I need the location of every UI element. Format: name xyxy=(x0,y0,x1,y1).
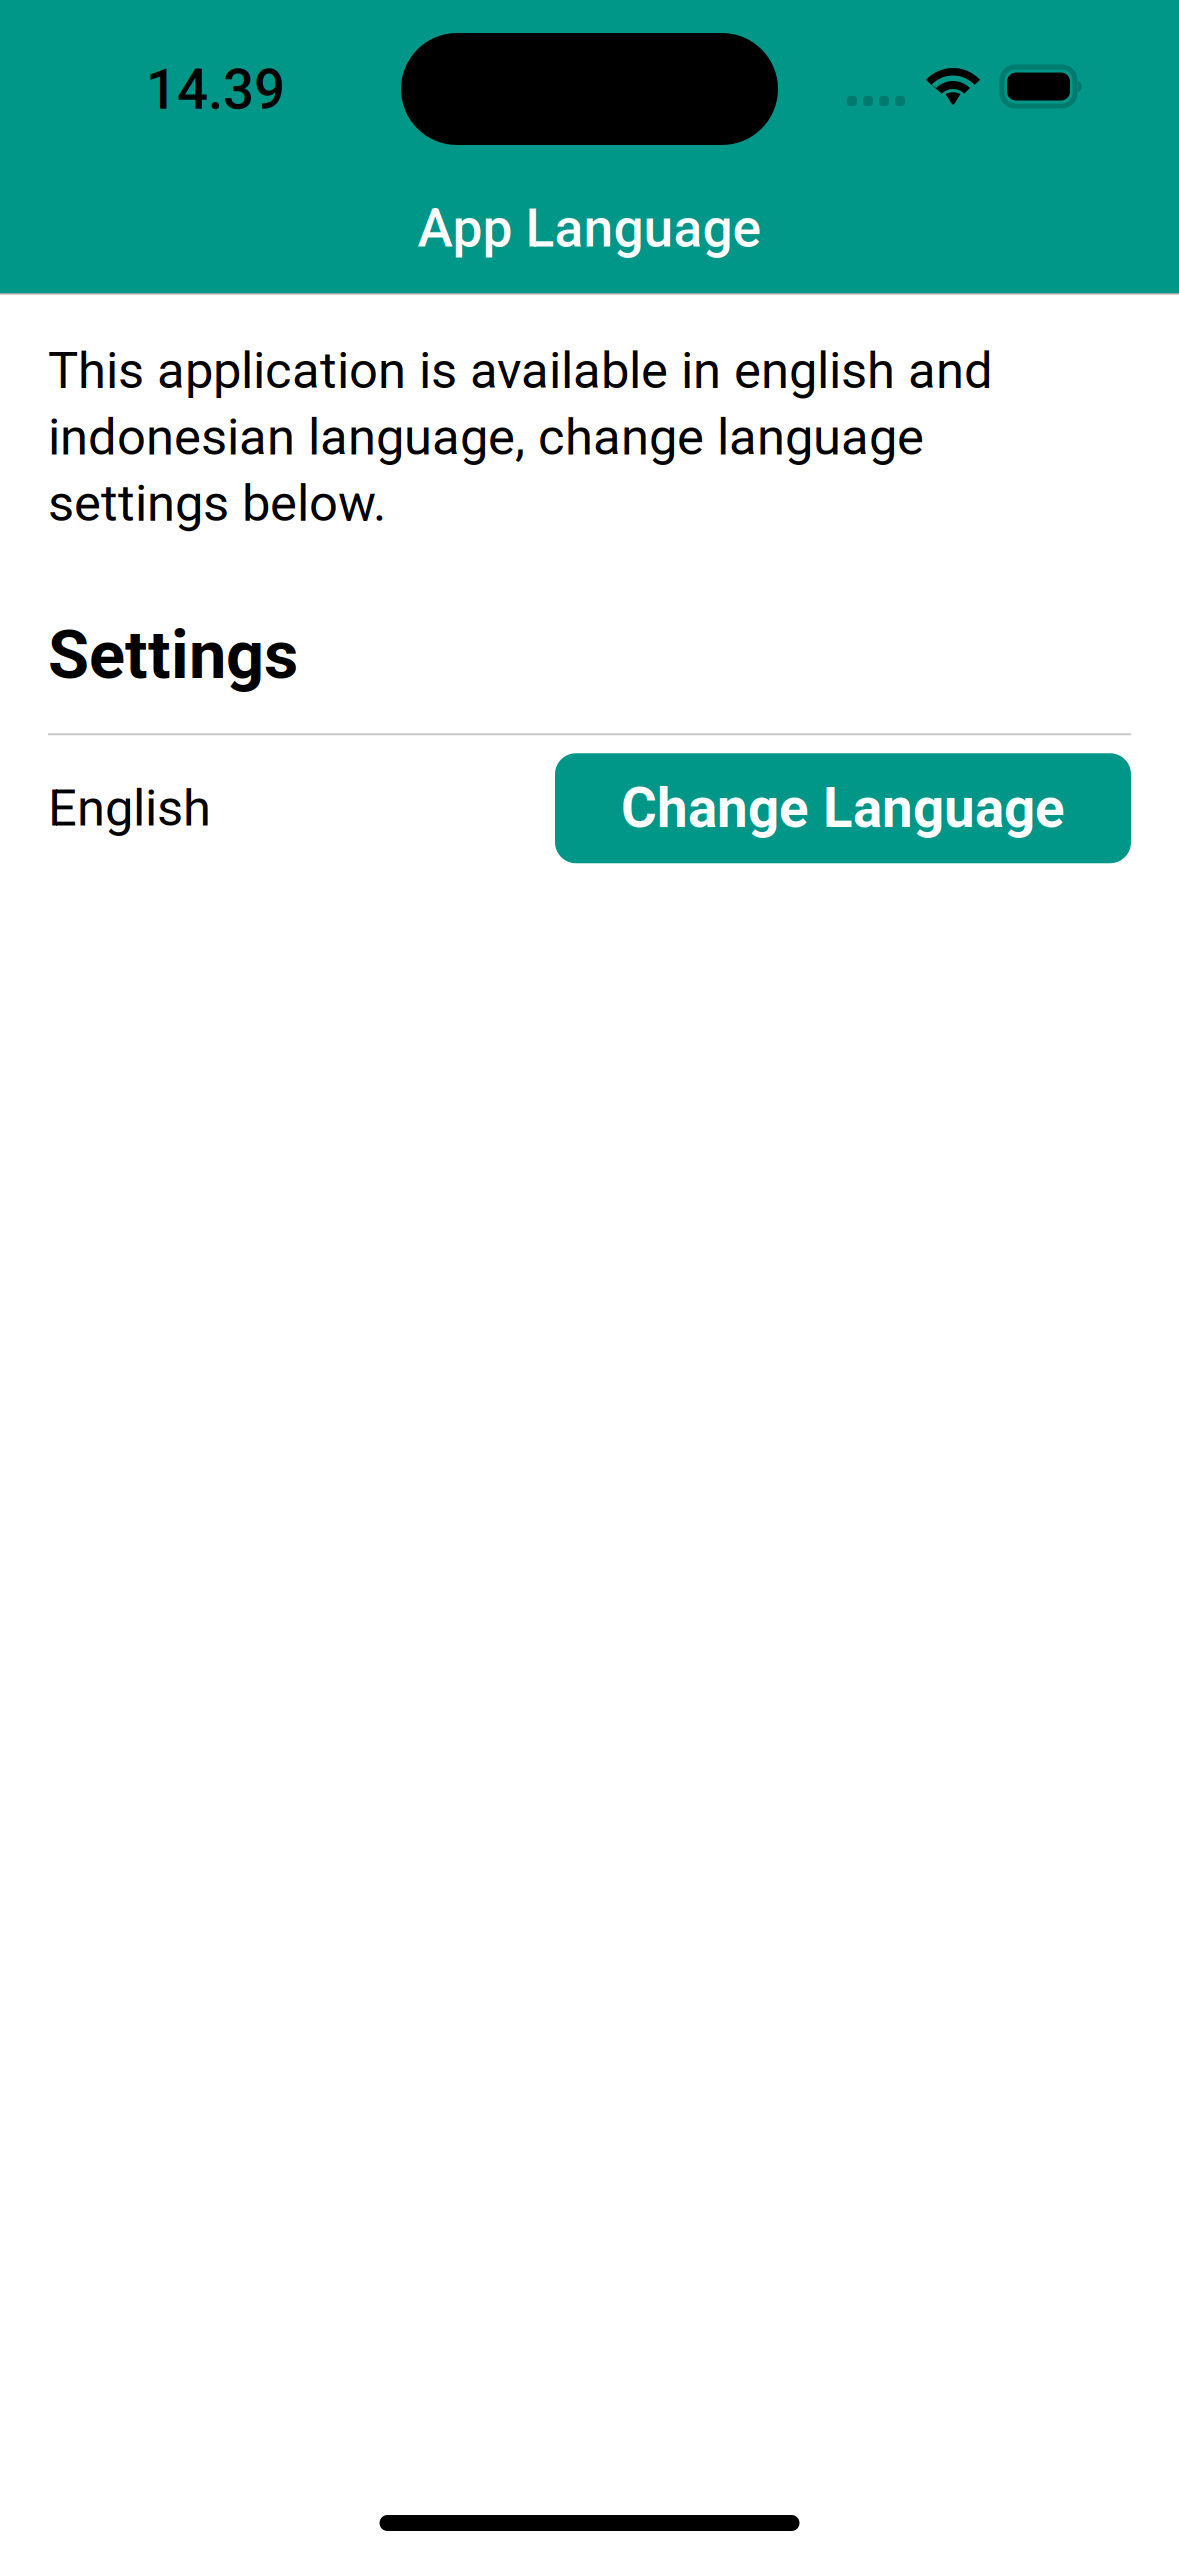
button[interactable]: Change Language xyxy=(555,753,1131,863)
staticText: Settings xyxy=(48,616,298,694)
staticText: App Language xyxy=(417,197,761,259)
staticText: English xyxy=(48,779,211,838)
staticText: 14.39 xyxy=(146,58,285,122)
staticText: This application is available in english… xyxy=(48,341,993,533)
staticText: Change Language xyxy=(621,776,1065,840)
